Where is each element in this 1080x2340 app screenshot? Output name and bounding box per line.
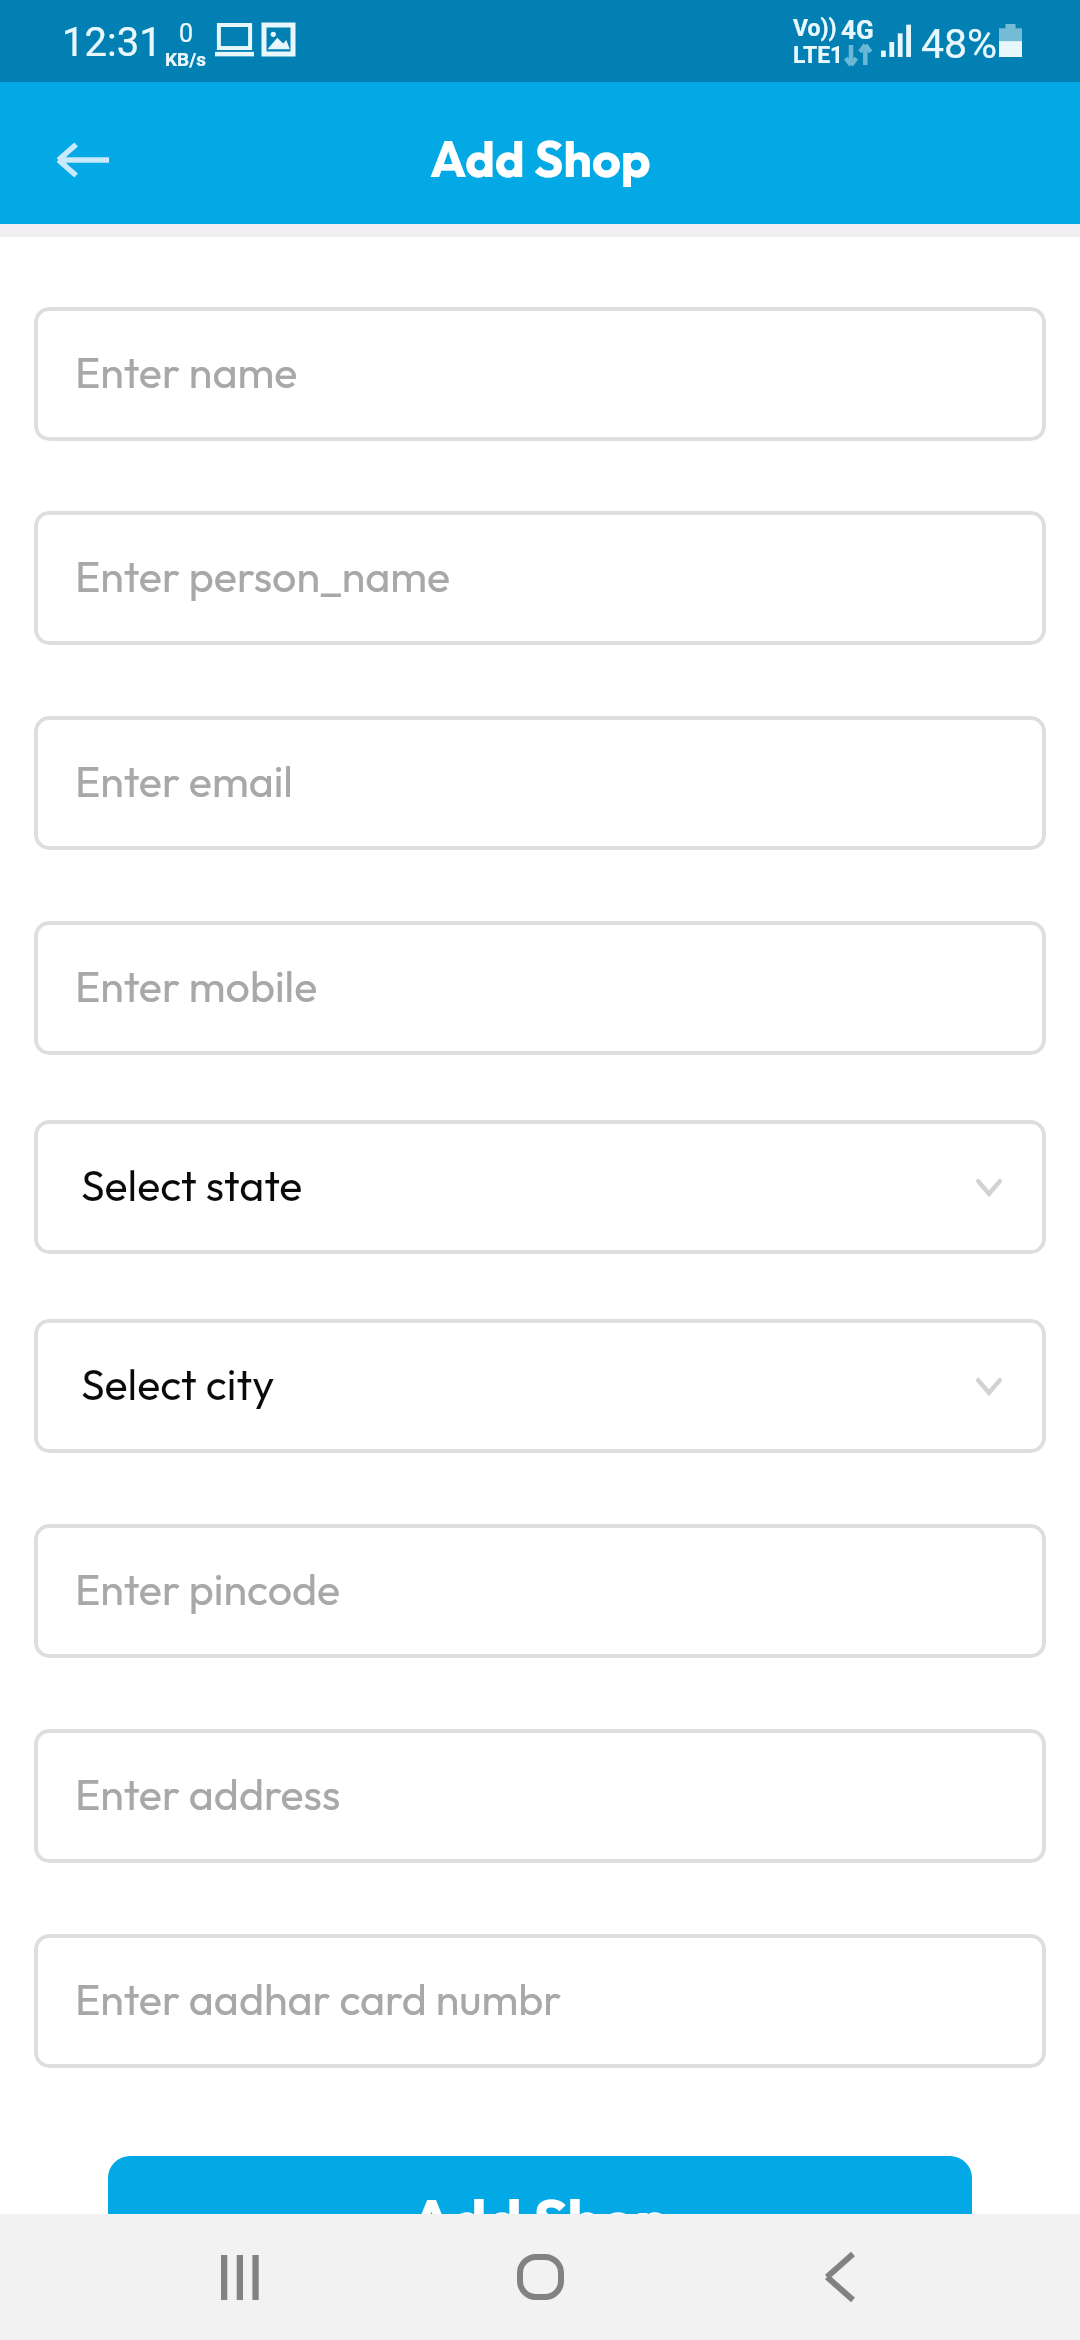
staticText: Enter email (75, 754, 293, 808)
button[interactable]: Enter mobile (34, 921, 1046, 1055)
button[interactable]: Enter address (34, 1729, 1046, 1863)
button[interactable]: Add Shop (108, 2156, 972, 2286)
staticText: Select state (81, 1158, 303, 1212)
staticText: 0 (179, 19, 194, 48)
staticText: 48% (921, 20, 998, 68)
button[interactable]: Enter aadhar card numbr (34, 1934, 1046, 2068)
button[interactable]: Select state (34, 1120, 1046, 1254)
staticText: 12:31 (62, 19, 162, 66)
staticText: Enter address (75, 1767, 341, 1821)
staticText: Vo)) (793, 15, 837, 42)
button[interactable]: Select city (34, 1319, 1046, 1453)
staticText: Add Shop (410, 2182, 671, 2256)
staticText: Add Shop (430, 127, 651, 190)
button[interactable]: Recent apps (180, 2217, 300, 2337)
staticText: 4G (841, 15, 874, 45)
button[interactable]: Back (40, 117, 124, 201)
button[interactable]: Back (780, 2217, 900, 2337)
staticText: Enter mobile (75, 959, 318, 1013)
button[interactable]: Enter person_name (34, 511, 1046, 645)
staticText: LTE1 (793, 42, 844, 69)
staticText: Enter name (75, 345, 298, 399)
staticText: Enter pincode (75, 1562, 341, 1616)
staticText: Enter person_name (75, 549, 451, 603)
button[interactable]: Enter email (34, 716, 1046, 850)
staticText: KB/s (165, 48, 207, 70)
staticText: Select city (81, 1357, 275, 1411)
button[interactable]: Enter name (34, 307, 1046, 441)
staticText: Enter aadhar card numbr (75, 1972, 562, 2026)
button[interactable]: Enter pincode (34, 1524, 1046, 1658)
button[interactable]: Home (480, 2217, 600, 2337)
